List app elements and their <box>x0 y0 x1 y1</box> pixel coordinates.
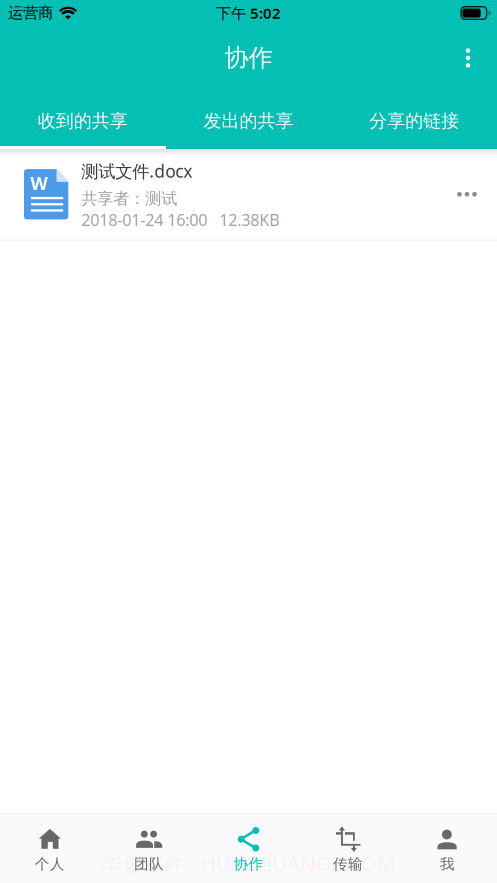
staticText: 收到的共享 <box>38 110 128 132</box>
staticText: 协作 <box>233 855 263 873</box>
button[interactable]: 个人 <box>0 813 99 883</box>
staticText: 2018-01-24 16:00 12.38KB <box>81 209 279 230</box>
staticText: 华创软件 · HUACHUANGZ.COM <box>101 849 396 877</box>
button[interactable]: 发出的共享 <box>166 93 331 149</box>
staticText: 团队 <box>134 855 164 873</box>
staticText: 共享者：测试 <box>81 189 177 208</box>
staticText: 分享的链接 <box>369 110 459 132</box>
button[interactable]: 传输 <box>298 813 398 883</box>
staticText: 我 <box>440 855 455 873</box>
staticText: 传输 <box>333 855 363 873</box>
staticText: 运营商 <box>8 4 53 22</box>
button[interactable]: 分享的链接 <box>331 93 497 149</box>
staticText: 下午 5:02 <box>216 3 281 23</box>
button[interactable]: 我 <box>398 813 497 883</box>
button[interactable]: 更多 <box>446 30 490 86</box>
staticText: 测试文件.docx <box>81 160 192 183</box>
button[interactable]: W <box>0 149 497 239</box>
staticText: 发出的共享 <box>203 110 293 132</box>
staticText: 个人 <box>35 855 65 873</box>
staticText: 协作 <box>224 43 272 73</box>
button[interactable]: 团队 <box>99 813 199 883</box>
button[interactable]: 收到的共享 <box>0 93 166 149</box>
staticText: W <box>30 171 47 195</box>
button[interactable]: 协作 <box>199 813 298 883</box>
button[interactable]: 更多操作 <box>437 164 497 224</box>
